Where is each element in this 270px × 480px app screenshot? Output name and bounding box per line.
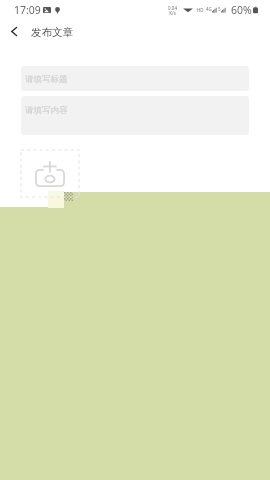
button[interactable]: Add photo (21, 150, 79, 197)
staticText: 0.04 K/s (168, 5, 177, 16)
staticText: 60% (231, 3, 252, 17)
staticText: 5 (218, 6, 221, 12)
staticText: HD (197, 7, 204, 13)
staticText: 请填写内容 (25, 105, 68, 116)
button[interactable]: 请填写内容 (21, 96, 249, 135)
button[interactable]: 请填写标题 (21, 66, 249, 91)
button[interactable]: Back (0, 18, 28, 44)
staticText: 请填写标题 (25, 74, 68, 85)
staticText: 17:09 (14, 3, 41, 17)
staticText: 4G (206, 6, 212, 12)
staticText: 发布文章 (31, 26, 73, 39)
